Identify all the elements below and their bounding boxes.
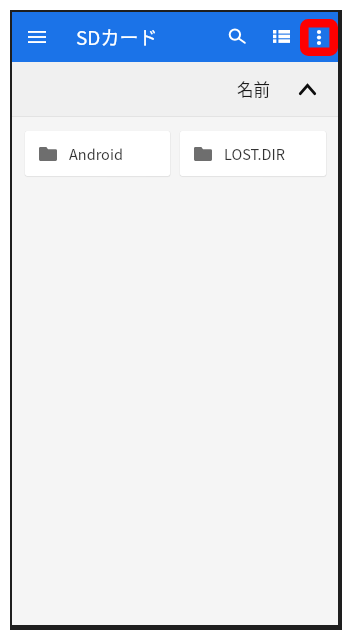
button[interactable]: Android <box>25 131 170 176</box>
button[interactable]: Search <box>223 22 253 52</box>
staticText: Android <box>69 143 123 164</box>
button[interactable]: More options <box>300 18 338 56</box>
staticText: SDカード <box>76 23 158 51</box>
staticText: 名前 <box>237 77 270 101</box>
button[interactable]: 名前 <box>237 77 316 101</box>
button[interactable]: LOST.DIR <box>180 131 326 176</box>
staticText: LOST.DIR <box>224 143 285 164</box>
button[interactable]: Switch view <box>266 22 296 52</box>
button[interactable]: Open navigation drawer <box>24 24 50 50</box>
